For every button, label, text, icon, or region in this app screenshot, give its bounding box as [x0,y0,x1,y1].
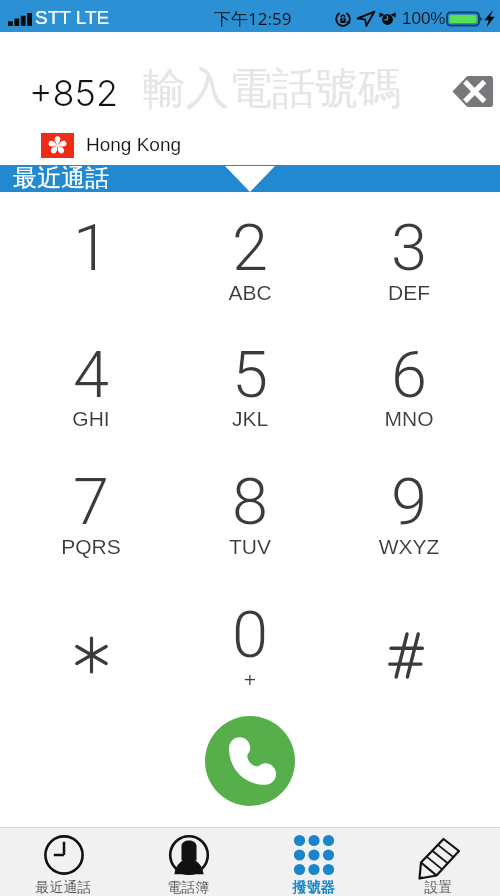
staticText: 8 [190,464,310,540]
button[interactable]: 最近通話 [0,165,500,192]
staticText: PQRS [31,535,151,558]
staticText: ABC [190,281,310,304]
staticText: 7 [31,464,151,540]
staticText: 輸入電話號碼 [143,62,401,116]
staticText: 下午12:59 [214,7,292,30]
button[interactable]: 9 [349,464,469,576]
staticText: WXYZ [349,535,469,558]
staticText: GHI [31,407,151,430]
staticText: Hong Kong [86,134,182,155]
button[interactable]: Backspace [451,76,493,107]
staticText: STT LTE [35,7,110,28]
staticText: 1 [31,210,151,286]
staticText: MNO [349,407,469,430]
button[interactable]: 4 [31,337,151,449]
button[interactable]: 2 [190,210,310,322]
staticText: 設置 [376,879,500,896]
button[interactable]: 6 [349,337,469,449]
staticText: TUV [190,535,310,558]
staticText: 100% [402,9,446,28]
button[interactable]: 7 [31,464,151,576]
button[interactable]: 3 [349,210,469,322]
staticText: 0 [190,597,310,673]
staticText: 6 [349,337,469,413]
button[interactable]: 1 [31,210,151,322]
staticText: 撥號器 [251,879,376,896]
button[interactable]: Hong Kong [0,123,500,165]
staticText: 4 [31,337,151,413]
button[interactable] [31,597,151,709]
staticText: + [190,668,310,691]
staticText: 最近通話 [1,879,126,896]
button[interactable]: 電話簿 [126,828,251,896]
staticText: 5 [190,337,310,413]
staticText: JKL [190,407,310,430]
button[interactable]: 0 [190,597,310,709]
button[interactable]: Call [205,716,295,806]
staticText: 2 [190,210,310,286]
button[interactable]: 8 [190,464,310,576]
button[interactable]: 設置 [376,828,500,896]
staticText: +852 [29,71,118,115]
button[interactable]: 撥號器 [251,828,376,896]
staticText: DEF [349,281,469,304]
button[interactable] [349,597,469,709]
button[interactable]: 5 [190,337,310,449]
button[interactable]: 最近通話 [1,828,126,896]
staticText: 9 [349,464,469,540]
staticText: 電話簿 [126,879,251,896]
staticText: 最近通話 [13,163,109,190]
staticText: 3 [349,210,469,286]
